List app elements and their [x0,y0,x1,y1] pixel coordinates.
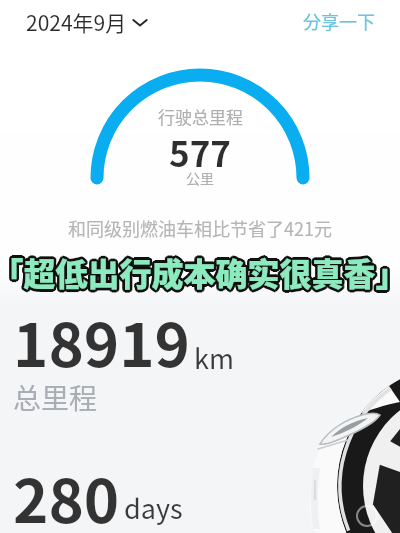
staticText: 和同级别燃油车相比节省了421元 [68,215,332,241]
button[interactable]: 分享一下 [297,2,381,40]
staticText: km [194,338,234,377]
staticText: days [124,488,183,527]
staticText: 公里 [186,168,214,188]
button[interactable]: 2024年9月 [22,3,152,41]
staticText: 280 [13,453,120,533]
staticText: 577 [169,126,231,177]
staticText: 总里程 [13,377,98,418]
staticText: 行驶总里程 [158,104,243,129]
staticText: 2024年9月 [26,7,127,37]
staticText: 18919 [13,297,190,384]
staticText: 分享一下 [303,8,375,34]
